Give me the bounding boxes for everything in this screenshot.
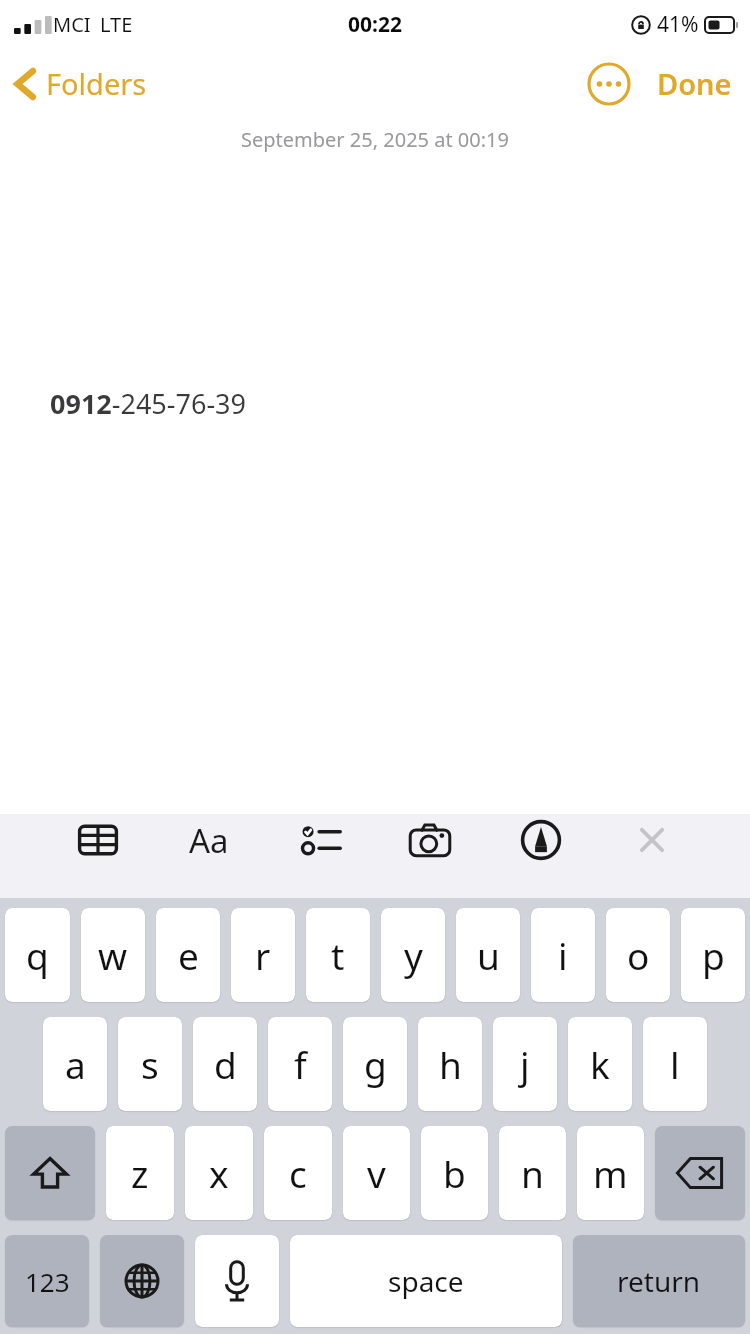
button[interactable]: m <box>577 1126 644 1220</box>
button[interactable]: u <box>456 908 520 1002</box>
staticText: f <box>294 1039 307 1089</box>
staticText: u <box>477 930 500 980</box>
button[interactable]: r <box>231 908 295 1002</box>
button[interactable]: j <box>493 1017 557 1111</box>
staticText: 123 <box>25 1264 70 1299</box>
button[interactable]: n <box>499 1126 566 1220</box>
button[interactable]: p <box>681 908 745 1002</box>
staticText: l <box>670 1039 680 1089</box>
staticText: a <box>65 1039 86 1089</box>
button[interactable]: Text format <box>183 814 235 866</box>
staticText: LTE <box>100 11 133 38</box>
button[interactable]: Change keyboard <box>100 1235 184 1327</box>
button[interactable]: k <box>568 1017 632 1111</box>
staticText: r <box>255 930 271 980</box>
staticText: September 25, 2025 at 00:19 <box>0 126 750 153</box>
button[interactable]: Insert table <box>72 814 124 866</box>
staticText: e <box>178 930 199 980</box>
staticText: 0912-245-76-39 <box>50 385 246 422</box>
button[interactable]: c <box>264 1126 332 1220</box>
staticText: 00:22 <box>348 10 402 39</box>
staticText: 41% <box>657 10 699 39</box>
button[interactable]: Checklist <box>294 814 346 866</box>
staticText: b <box>443 1148 466 1198</box>
button[interactable]: o <box>606 908 670 1002</box>
button[interactable]: More options <box>585 60 633 108</box>
staticText: w <box>98 930 128 980</box>
button[interactable]: e <box>156 908 220 1002</box>
staticText: Folders <box>46 64 147 103</box>
staticText: Done <box>657 64 732 103</box>
button[interactable]: b <box>421 1126 488 1220</box>
staticText: k <box>590 1039 610 1089</box>
staticText: n <box>521 1148 544 1198</box>
button[interactable]: Close keyboard <box>626 814 678 866</box>
button[interactable]: q <box>5 908 70 1002</box>
button[interactable]: Dictate <box>195 1235 279 1327</box>
button[interactable]: Shift <box>5 1126 95 1220</box>
staticText: h <box>439 1039 462 1089</box>
staticText: y <box>404 930 423 980</box>
staticText: p <box>702 930 725 980</box>
button[interactable]: l <box>643 1017 707 1111</box>
button[interactable]: a <box>43 1017 107 1111</box>
staticText: o <box>627 930 650 980</box>
button[interactable]: f <box>268 1017 332 1111</box>
button[interactable]: s <box>118 1017 182 1111</box>
staticText: m <box>593 1148 628 1198</box>
staticText: Aa <box>189 818 229 863</box>
staticText: t <box>331 930 345 980</box>
button[interactable]: t <box>306 908 370 1002</box>
button[interactable]: g <box>343 1017 407 1111</box>
button[interactable]: return <box>573 1235 745 1327</box>
button[interactable]: Done <box>653 58 736 109</box>
staticText: return <box>617 1262 701 1300</box>
button[interactable]: z <box>106 1126 174 1220</box>
staticText: d <box>214 1039 237 1089</box>
button[interactable]: h <box>418 1017 482 1111</box>
staticText: space <box>388 1262 464 1300</box>
button[interactable]: Markup <box>515 814 567 866</box>
button[interactable]: Folders <box>0 58 157 109</box>
staticText: v <box>367 1148 386 1198</box>
staticText: s <box>141 1039 159 1089</box>
button[interactable]: v <box>343 1126 410 1220</box>
button[interactable]: 123 <box>5 1235 89 1327</box>
staticText: c <box>289 1148 307 1198</box>
staticText: z <box>131 1148 149 1198</box>
button[interactable]: w <box>81 908 145 1002</box>
staticText: q <box>26 930 49 980</box>
staticText: MCI <box>53 11 91 38</box>
button[interactable]: i <box>531 908 595 1002</box>
button[interactable]: space <box>290 1235 562 1327</box>
staticText: j <box>520 1039 530 1089</box>
staticText: x <box>209 1148 229 1198</box>
button[interactable]: Camera <box>404 814 456 866</box>
button[interactable]: Backspace <box>655 1126 745 1220</box>
button[interactable]: y <box>381 908 445 1002</box>
button[interactable]: d <box>193 1017 257 1111</box>
staticText: g <box>364 1039 387 1089</box>
button[interactable]: x <box>185 1126 253 1220</box>
staticText: i <box>558 930 568 980</box>
